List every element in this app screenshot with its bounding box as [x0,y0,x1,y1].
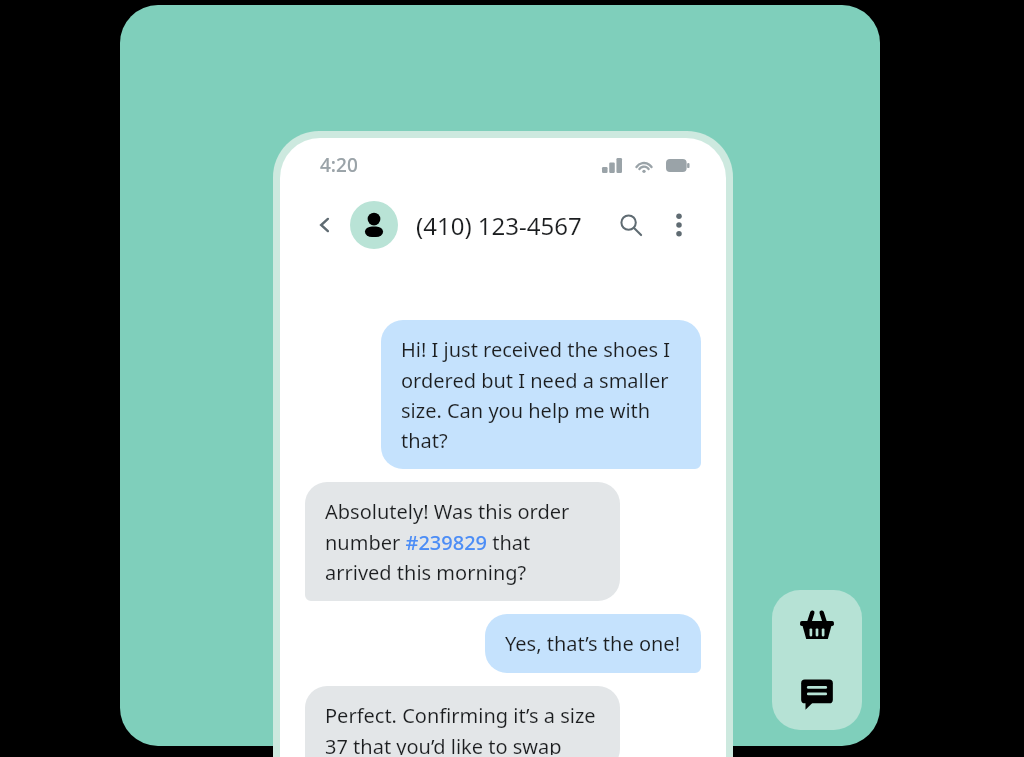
button[interactable]: Back [308,208,342,242]
button[interactable]: (410) 123-4567 [350,201,612,249]
button[interactable]: Absolutely! Was this order number #23982… [305,482,620,601]
staticText: Absolutely! Was this order number #23982… [325,498,600,585]
button[interactable]: Perfect. Confirming it’s a size 37 that … [305,686,620,757]
staticText: (410) 123-4567 [416,209,582,242]
button[interactable]: Yes, that’s the one! [485,614,701,673]
button[interactable]: More options [662,208,696,242]
staticText: Yes, that’s the one! [505,630,681,657]
button[interactable]: Hi! I just received the shoes I ordered … [381,320,701,469]
button[interactable]: Messages [793,670,841,718]
staticText: Hi! I just received the shoes I ordered … [401,336,681,453]
button[interactable]: Shop basket [793,602,841,650]
staticText: Perfect. Confirming it’s a size 37 that … [325,702,600,755]
staticText: 4:20 [320,152,358,178]
button[interactable]: Search [612,206,650,244]
